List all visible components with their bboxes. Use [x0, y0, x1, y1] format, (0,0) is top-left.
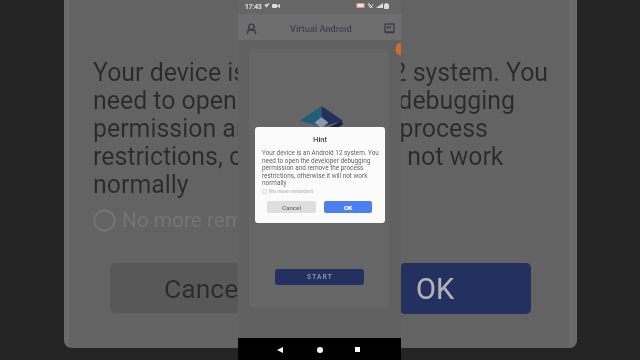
- staticText: OK: [416, 272, 455, 306]
- staticText: need to open the developer debugging: [262, 157, 371, 165]
- button[interactable]: Account: [242, 20, 260, 38]
- button[interactable]: No more reminders: [262, 187, 314, 195]
- staticText: normally: [262, 179, 287, 187]
- button[interactable]: Cancel: [267, 201, 316, 213]
- staticText: No more reminders: [122, 208, 301, 230]
- staticText: OK: [344, 204, 353, 211]
- button[interactable]: Home: [314, 344, 325, 355]
- staticText: Your device is an Android 12 system. You: [262, 149, 379, 157]
- staticText: restrictions, otherwise it will not work: [262, 172, 368, 180]
- staticText: START: [307, 273, 333, 281]
- staticText: permission and remove the process: [262, 164, 364, 172]
- button[interactable]: Cancel: [110, 263, 286, 313]
- staticText: permission and remove the process: [93, 114, 488, 143]
- staticText: Your device is an Android 12 system. You: [93, 58, 549, 87]
- staticText: restrictions, otherwise it will not work: [93, 142, 504, 171]
- staticText: Cancel: [282, 204, 301, 211]
- button[interactable]: Recents: [352, 344, 363, 355]
- staticText: need to open the developer debugging: [93, 86, 516, 115]
- staticText: normally: [93, 170, 189, 199]
- button[interactable]: OK: [324, 201, 372, 213]
- button[interactable]: Back: [274, 344, 285, 355]
- button[interactable]: No more reminders: [94, 209, 301, 231]
- staticText: No more reminders: [269, 188, 314, 194]
- staticText: Hint: [313, 135, 328, 144]
- staticText: Virtual Android: [290, 23, 352, 34]
- button[interactable]: Saved: [380, 19, 398, 37]
- staticText: Cancel: [164, 273, 245, 304]
- button[interactable]: OK: [400, 263, 531, 314]
- staticText: 17:43: [245, 3, 262, 11]
- button[interactable]: Add: [392, 42, 401, 56]
- button[interactable]: START: [275, 269, 364, 285]
